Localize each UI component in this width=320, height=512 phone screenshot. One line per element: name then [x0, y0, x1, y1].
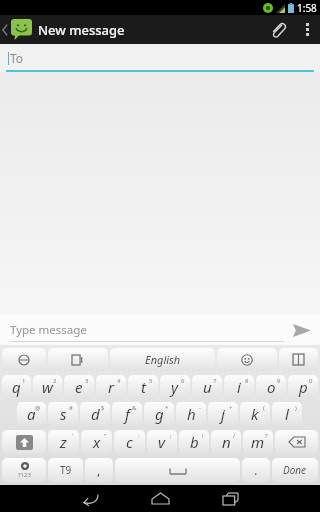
- staticText: To: [10, 50, 24, 66]
- button[interactable]: a: [17, 402, 46, 426]
- staticText: s: [60, 404, 67, 424]
- staticText: ): [295, 404, 297, 412]
- staticText: (: [263, 404, 265, 412]
- staticText: j: [221, 404, 225, 424]
- staticText: 2: [53, 377, 57, 385]
- button[interactable]: T9: [48, 458, 83, 482]
- button[interactable]: v: [147, 430, 177, 454]
- button[interactable]: English: [110, 348, 215, 371]
- button[interactable]: w: [33, 375, 62, 398]
- button[interactable]: e: [64, 375, 94, 398]
- button[interactable]: x: [81, 430, 112, 454]
- button[interactable]: l: [272, 402, 302, 426]
- staticText: 5: [149, 377, 153, 385]
- staticText: g: [155, 404, 164, 424]
- staticText: ,: [97, 461, 101, 479]
- button[interactable]: Recents: [195, 485, 265, 512]
- button[interactable]: u: [192, 375, 222, 398]
- button[interactable]: Send: [284, 315, 320, 345]
- button[interactable]: m: [243, 430, 273, 454]
- button[interactable]: n: [211, 430, 241, 454]
- staticText: c: [126, 432, 133, 452]
- button[interactable]: [2, 430, 46, 454]
- button[interactable]: i: [224, 375, 254, 398]
- button[interactable]: o: [256, 375, 286, 398]
- staticText: i: [237, 377, 241, 397]
- button[interactable]: [279, 348, 318, 371]
- button[interactable]: c: [114, 430, 145, 454]
- staticText: 7: [213, 377, 217, 385]
- staticText: y: [171, 377, 179, 397]
- button[interactable]: [2, 348, 46, 371]
- staticText: #: [69, 404, 73, 412]
- staticText: Done: [283, 463, 307, 477]
- button[interactable]: j: [208, 402, 238, 426]
- staticText: /: [233, 432, 236, 440]
- button[interactable]: d: [80, 402, 110, 426]
- staticText: !: [202, 432, 204, 440]
- button[interactable]: r: [96, 375, 126, 398]
- staticText: 6: [181, 377, 185, 385]
- button[interactable]: b: [179, 430, 209, 454]
- button[interactable]: Done: [272, 458, 318, 482]
- staticText: n: [222, 432, 231, 452]
- staticText: @: [35, 404, 41, 412]
- staticText: ": [104, 432, 107, 440]
- staticText: x: [93, 432, 101, 452]
- staticText: 4: [117, 377, 121, 385]
- staticText: 8: [245, 377, 249, 385]
- staticText: q: [12, 377, 21, 397]
- staticText: 3: [85, 377, 89, 385]
- staticText: ;: [170, 432, 172, 440]
- button[interactable]: s: [48, 402, 78, 426]
- staticText: d: [91, 404, 100, 424]
- button[interactable]: h: [176, 402, 206, 426]
- staticText: w: [42, 377, 53, 397]
- staticText: a: [27, 404, 36, 424]
- button[interactable]: ?123: [2, 458, 46, 482]
- button[interactable]: Type message: [10, 315, 284, 345]
- button[interactable]: [275, 430, 318, 454]
- staticText: ': [72, 432, 74, 440]
- button[interactable]: y: [160, 375, 190, 398]
- button[interactable]: g: [144, 402, 174, 426]
- staticText: e: [75, 377, 83, 397]
- staticText: 1: [22, 377, 26, 385]
- button[interactable]: q: [2, 375, 31, 398]
- staticText: f: [125, 404, 130, 424]
- button[interactable]: z: [48, 430, 79, 454]
- staticText: z: [60, 432, 67, 452]
- button[interactable]: t: [128, 375, 158, 398]
- button[interactable]: Home: [125, 485, 195, 512]
- button[interactable]: f: [112, 402, 142, 426]
- staticText: b: [190, 432, 199, 452]
- button[interactable]: Back: [55, 485, 125, 512]
- button[interactable]: .: [242, 458, 270, 482]
- button[interactable]: To: [0, 44, 320, 72]
- staticText: h: [187, 404, 196, 424]
- staticText: 0: [309, 377, 313, 385]
- button[interactable]: Attach: [262, 15, 294, 44]
- button[interactable]: Up: [0, 15, 129, 44]
- button[interactable]: [217, 348, 277, 371]
- button[interactable]: ,: [85, 458, 113, 482]
- button[interactable]: [115, 458, 240, 482]
- staticText: ?123: [18, 471, 31, 479]
- staticText: -: [199, 404, 201, 412]
- staticText: *: [165, 404, 169, 412]
- staticText: New message: [38, 21, 125, 39]
- staticText: r: [108, 377, 114, 397]
- staticText: v: [158, 432, 166, 452]
- staticText: t: [141, 377, 146, 397]
- staticText: ?: [265, 432, 268, 440]
- staticText: T9: [60, 463, 72, 477]
- button[interactable]: More options: [294, 15, 320, 44]
- button[interactable]: p: [288, 375, 318, 398]
- button[interactable]: [48, 348, 108, 371]
- staticText: .: [254, 461, 258, 479]
- button[interactable]: k: [240, 402, 270, 426]
- staticText: &: [132, 404, 137, 412]
- staticText: +: [229, 404, 233, 412]
- staticText: 9: [277, 377, 281, 385]
- staticText: k: [251, 404, 259, 424]
